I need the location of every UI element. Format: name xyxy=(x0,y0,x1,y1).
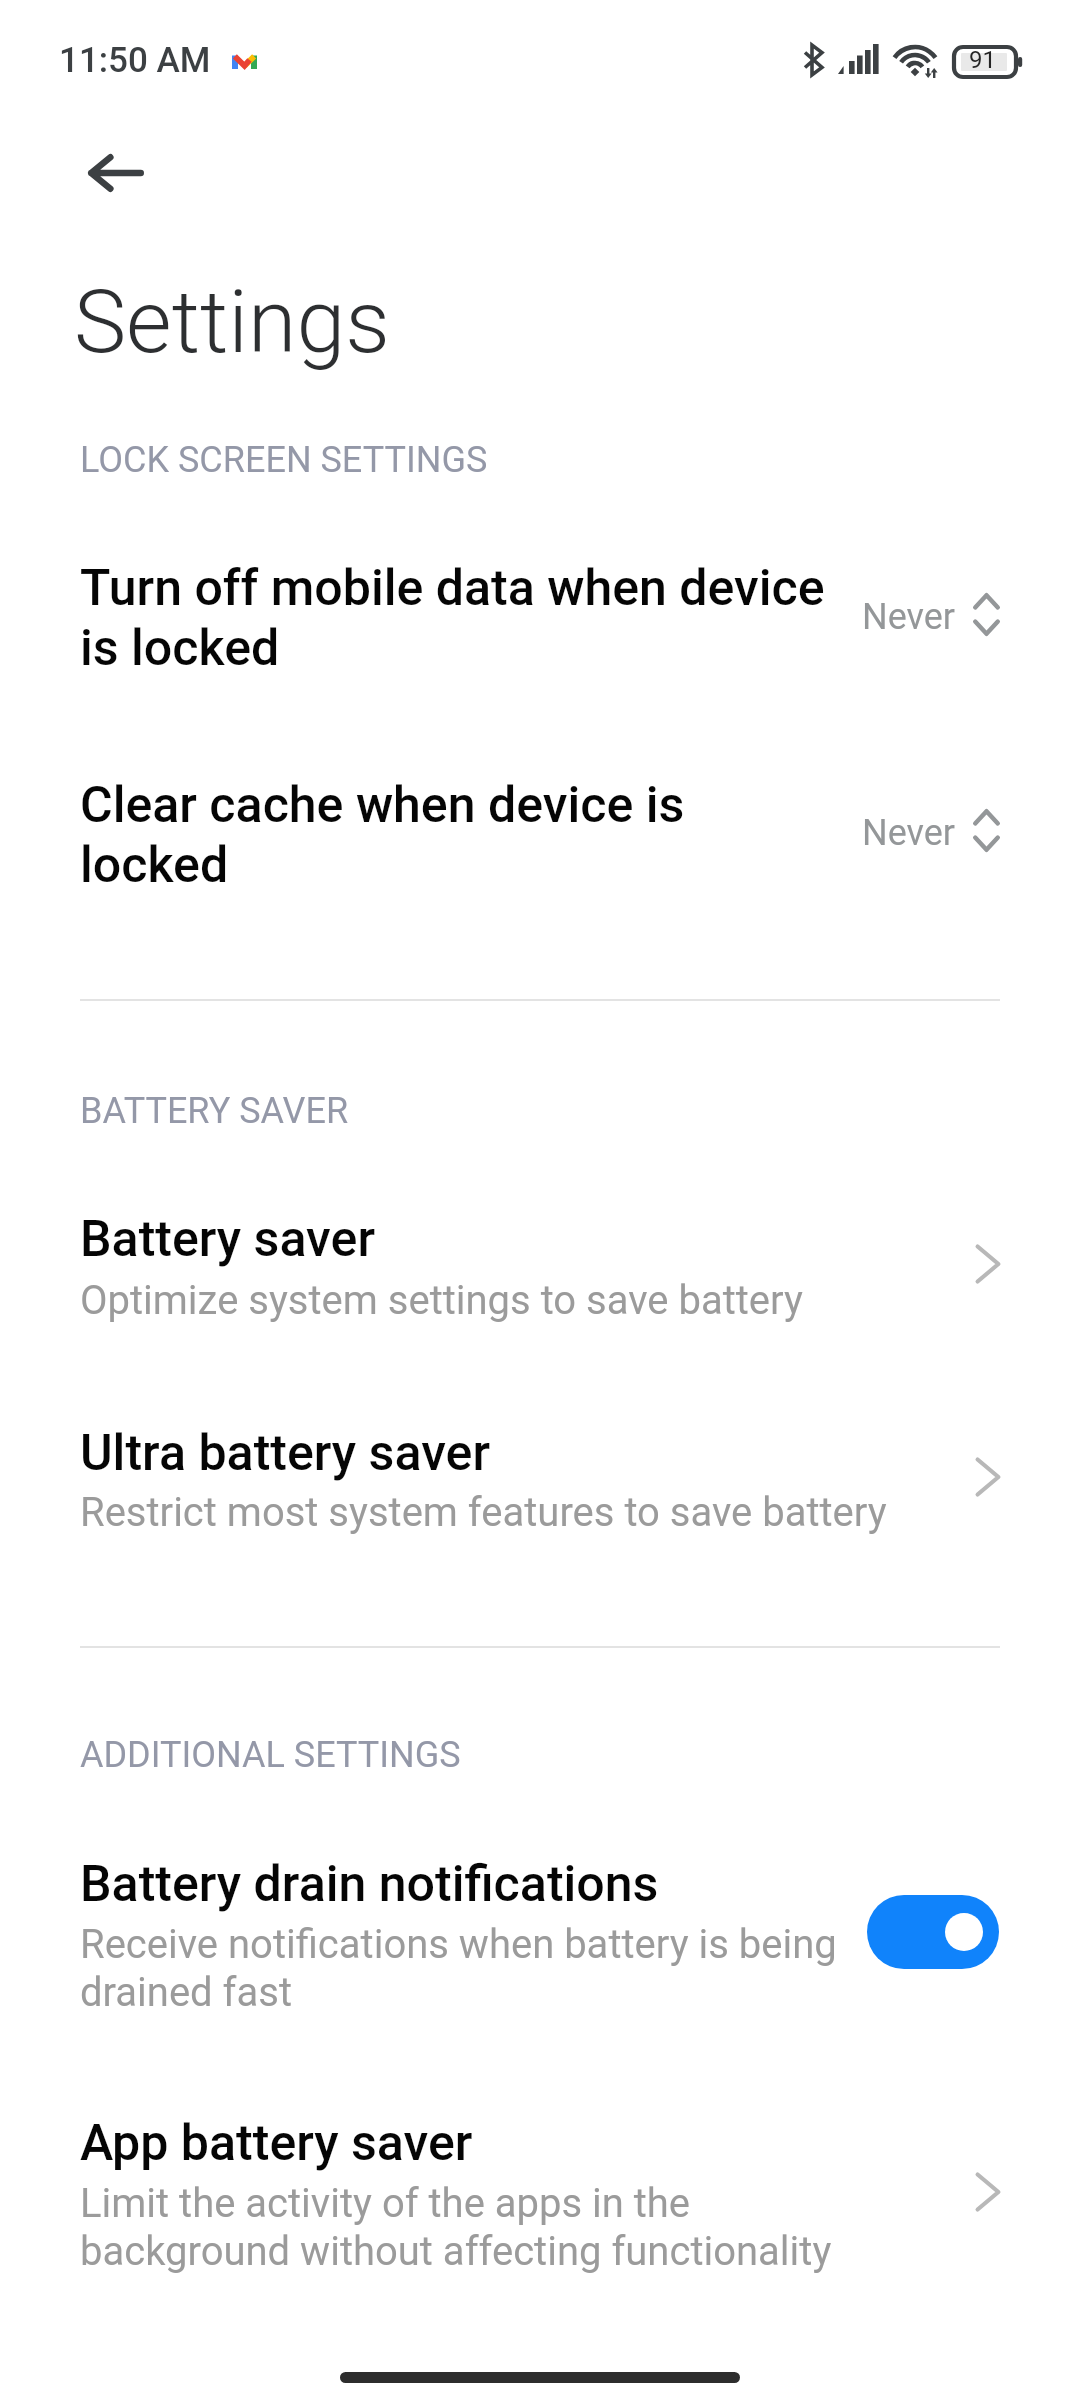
staticText: Limit the activity of the apps in the ba… xyxy=(80,2180,900,2275)
staticText: Receive notifications when battery is be… xyxy=(80,1921,860,2016)
button[interactable]: Battery saver xyxy=(0,1196,1080,1382)
staticText: 91 xyxy=(969,46,996,74)
button[interactable]: Ultra battery saver xyxy=(0,1410,1080,1596)
button[interactable]: Clear cache when device is locked xyxy=(0,712,1080,928)
button[interactable]: Turn off mobile data when device is lock… xyxy=(0,495,1080,711)
staticText: Ultra battery saver xyxy=(80,1424,940,1483)
staticText: Never xyxy=(862,596,956,638)
staticText: Settings xyxy=(74,270,390,373)
staticText: BATTERY SAVER xyxy=(80,1090,349,1132)
staticText: Turn off mobile data when device is lock… xyxy=(80,559,870,677)
staticText: App battery saver xyxy=(80,2114,940,2173)
staticText: ADDITIONAL SETTINGS xyxy=(80,1734,461,1776)
staticText: Restrict most system features to save ba… xyxy=(80,1489,900,1536)
staticText: 11:50 AM xyxy=(59,40,211,81)
staticText: Optimize system settings to save battery xyxy=(80,1277,900,1324)
button[interactable]: Back xyxy=(56,113,176,233)
button[interactable]: App battery saver xyxy=(0,2100,1080,2286)
button[interactable]: Battery drain notifications toggle xyxy=(867,1895,999,1969)
staticText: Battery drain notifications xyxy=(80,1855,860,1914)
staticText: Never xyxy=(862,812,956,854)
staticText: LOCK SCREEN SETTINGS xyxy=(80,439,488,481)
staticText: Clear cache when device is locked xyxy=(80,776,780,894)
staticText: Battery saver xyxy=(80,1210,940,1269)
button[interactable]: Battery drain notifications xyxy=(0,1841,1080,2027)
